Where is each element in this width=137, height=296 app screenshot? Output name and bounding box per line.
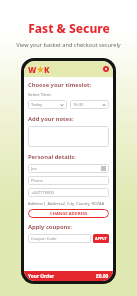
button[interactable]: Today	[28, 100, 67, 109]
staticText: K	[44, 64, 50, 75]
button[interactable]: Phone	[28, 176, 109, 185]
staticText: Personal details:	[28, 153, 76, 161]
staticText: Add your notes:	[28, 115, 74, 123]
button[interactable]: Coupon Code	[28, 234, 91, 243]
staticText: CHANGE ADDRESS	[50, 211, 88, 217]
staticText: Apply coupons:	[28, 223, 72, 231]
staticText: Select Time:	[28, 92, 52, 98]
button[interactable]: APPLY	[93, 234, 109, 243]
staticText: W	[28, 64, 37, 75]
staticText: Your Order	[28, 273, 55, 280]
staticText: Choose your timeslot:	[28, 81, 92, 89]
staticText: 16:30	[73, 102, 84, 107]
staticText: Address1, Address2, City, County, RG7AA	[28, 201, 105, 206]
button[interactable]: +447770000	[28, 188, 109, 197]
staticText: Today	[31, 102, 43, 107]
button[interactable]: Joe	[28, 164, 109, 173]
staticText: Fast & Secure	[28, 20, 110, 36]
staticText: £0.00	[96, 273, 109, 280]
button[interactable]	[28, 126, 109, 147]
button[interactable]: CHANGE ADDRESS	[28, 209, 109, 218]
staticText: Phone	[31, 178, 44, 183]
staticText: Coupon Code	[31, 236, 57, 241]
staticText: APPLY	[95, 236, 107, 241]
button[interactable]: 16:30	[70, 100, 109, 109]
staticText: +447770000	[31, 190, 54, 195]
staticText: Joe	[31, 166, 37, 171]
button[interactable]: Your Order	[24, 271, 113, 281]
button[interactable]: WOK home	[28, 64, 50, 75]
staticText: View your basket and checkout securely	[16, 41, 121, 49]
button[interactable]: Close	[103, 66, 109, 72]
